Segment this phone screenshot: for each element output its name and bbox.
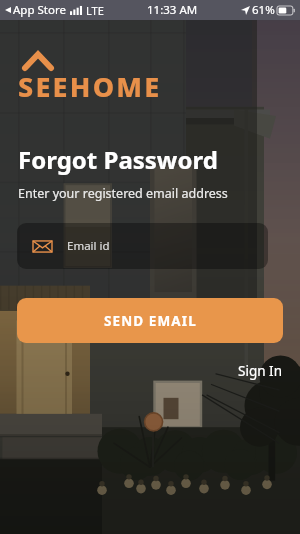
staticText: Email id [67, 238, 110, 254]
staticText: Enter your registered email address [18, 185, 228, 202]
staticText: SEND EMAIL [104, 312, 197, 330]
staticText: App Store [13, 2, 66, 18]
button[interactable]: Sign In [234, 359, 286, 383]
staticText: Forgot Password [18, 143, 218, 176]
button[interactable]: Email id [17, 223, 268, 269]
staticText: SEEHOME [18, 68, 162, 105]
button[interactable]: SEND EMAIL [17, 298, 283, 343]
staticText: 61% [252, 2, 275, 18]
staticText: 11:33 AM [147, 2, 198, 18]
staticText: Sign In [238, 362, 282, 380]
staticText: LTE [86, 3, 104, 18]
